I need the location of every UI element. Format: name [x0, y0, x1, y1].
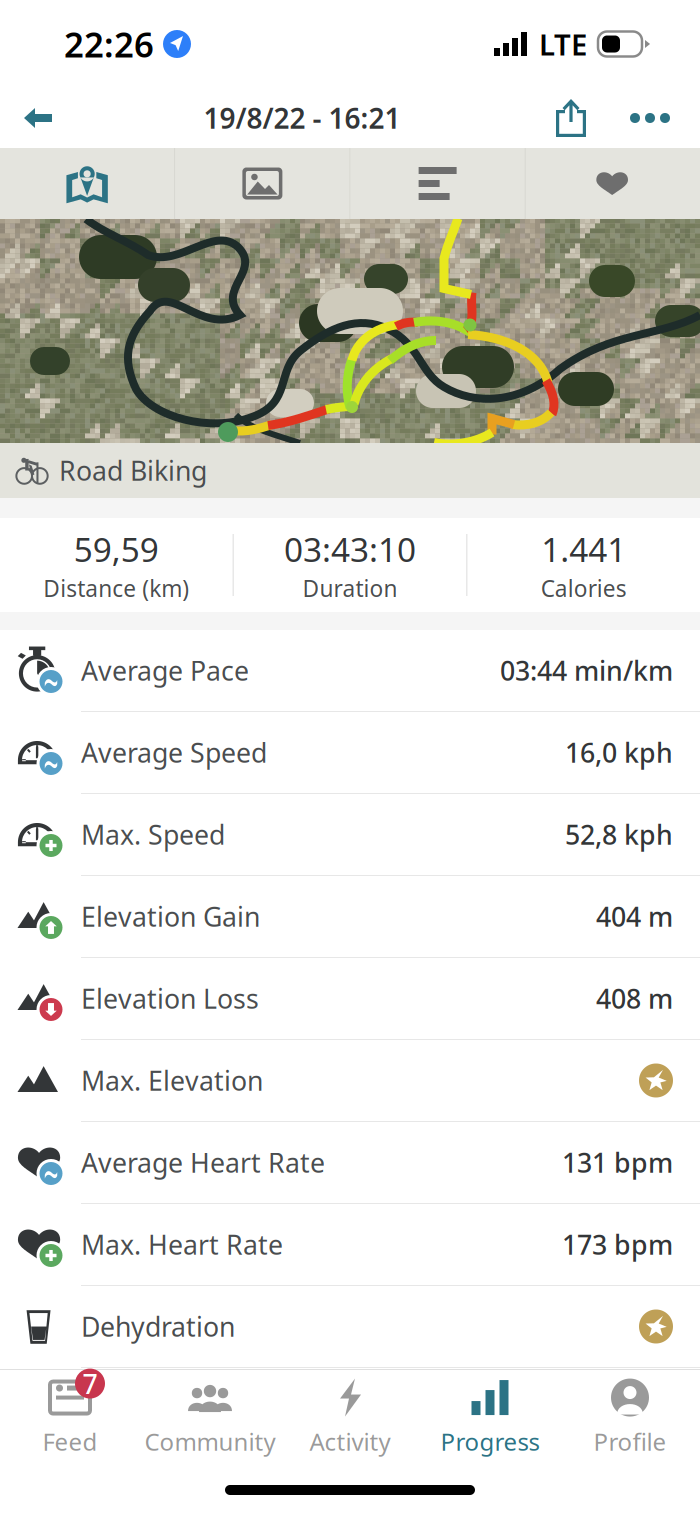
- staticText: 404 m: [596, 899, 673, 934]
- button[interactable]: Max. Elevation: [0, 1040, 700, 1122]
- button[interactable]: Progress: [420, 1370, 560, 1466]
- staticText: 1.441: [541, 527, 626, 571]
- button[interactable]: Elevation Loss: [0, 958, 700, 1040]
- staticText: Community: [144, 1426, 275, 1457]
- staticText: Road Biking: [59, 453, 207, 488]
- button[interactable]: Map: [0, 148, 174, 219]
- button[interactable]: Profile: [560, 1370, 700, 1466]
- button[interactable]: Average Heart Rate: [0, 1122, 700, 1204]
- staticText: 59,59: [74, 527, 159, 571]
- staticText: Max. Elevation: [81, 1063, 263, 1098]
- button[interactable]: Community: [140, 1370, 280, 1466]
- staticText: 131 bpm: [562, 1145, 673, 1180]
- staticText: Feed: [42, 1426, 97, 1457]
- staticText: Activity: [309, 1426, 390, 1457]
- staticText: Duration: [302, 573, 397, 603]
- button[interactable]: Back: [8, 90, 68, 146]
- staticText: Average Speed: [81, 735, 267, 770]
- staticText: 7: [82, 1366, 97, 1401]
- staticText: Max. Speed: [81, 817, 225, 852]
- staticText: Dehydration: [81, 1309, 235, 1344]
- button[interactable]: Max. Speed: [0, 794, 700, 876]
- button[interactable]: Likes: [526, 148, 700, 219]
- staticText: 19/8/22 - 16:21: [203, 99, 400, 137]
- button[interactable]: Max. Heart Rate: [0, 1204, 700, 1286]
- button[interactable]: Dehydration: [0, 1286, 700, 1368]
- staticText: Max. Heart Rate: [81, 1227, 283, 1262]
- staticText: LTE: [539, 24, 587, 63]
- staticText: Average Pace: [81, 653, 249, 688]
- staticText: Elevation Loss: [81, 981, 259, 1016]
- staticText: Average Heart Rate: [81, 1145, 325, 1180]
- button[interactable]: Average Pace: [0, 630, 700, 712]
- staticText: Progress: [440, 1426, 539, 1457]
- button[interactable]: Elevation Gain: [0, 876, 700, 958]
- staticText: 22:26: [64, 21, 154, 67]
- button[interactable]: Share: [536, 89, 606, 147]
- staticText: 03:43:10: [284, 527, 416, 571]
- button[interactable]: Photos: [175, 148, 349, 219]
- staticText: Distance (km): [43, 573, 189, 603]
- staticText: 03:44 min/km: [500, 653, 673, 688]
- staticText: 52,8 kph: [565, 817, 673, 852]
- button[interactable]: Splits: [350, 148, 525, 219]
- staticText: 408 m: [596, 981, 673, 1016]
- button[interactable]: Activity: [280, 1370, 420, 1466]
- staticText: Profile: [593, 1426, 666, 1457]
- staticText: Elevation Gain: [81, 899, 260, 934]
- staticText: Calories: [541, 573, 627, 603]
- staticText: 16,0 kph: [565, 735, 673, 770]
- button[interactable]: Average Speed: [0, 712, 700, 794]
- button[interactable]: More: [606, 93, 682, 143]
- staticText: 173 bpm: [562, 1227, 673, 1262]
- button[interactable]: 7: [0, 1370, 140, 1466]
